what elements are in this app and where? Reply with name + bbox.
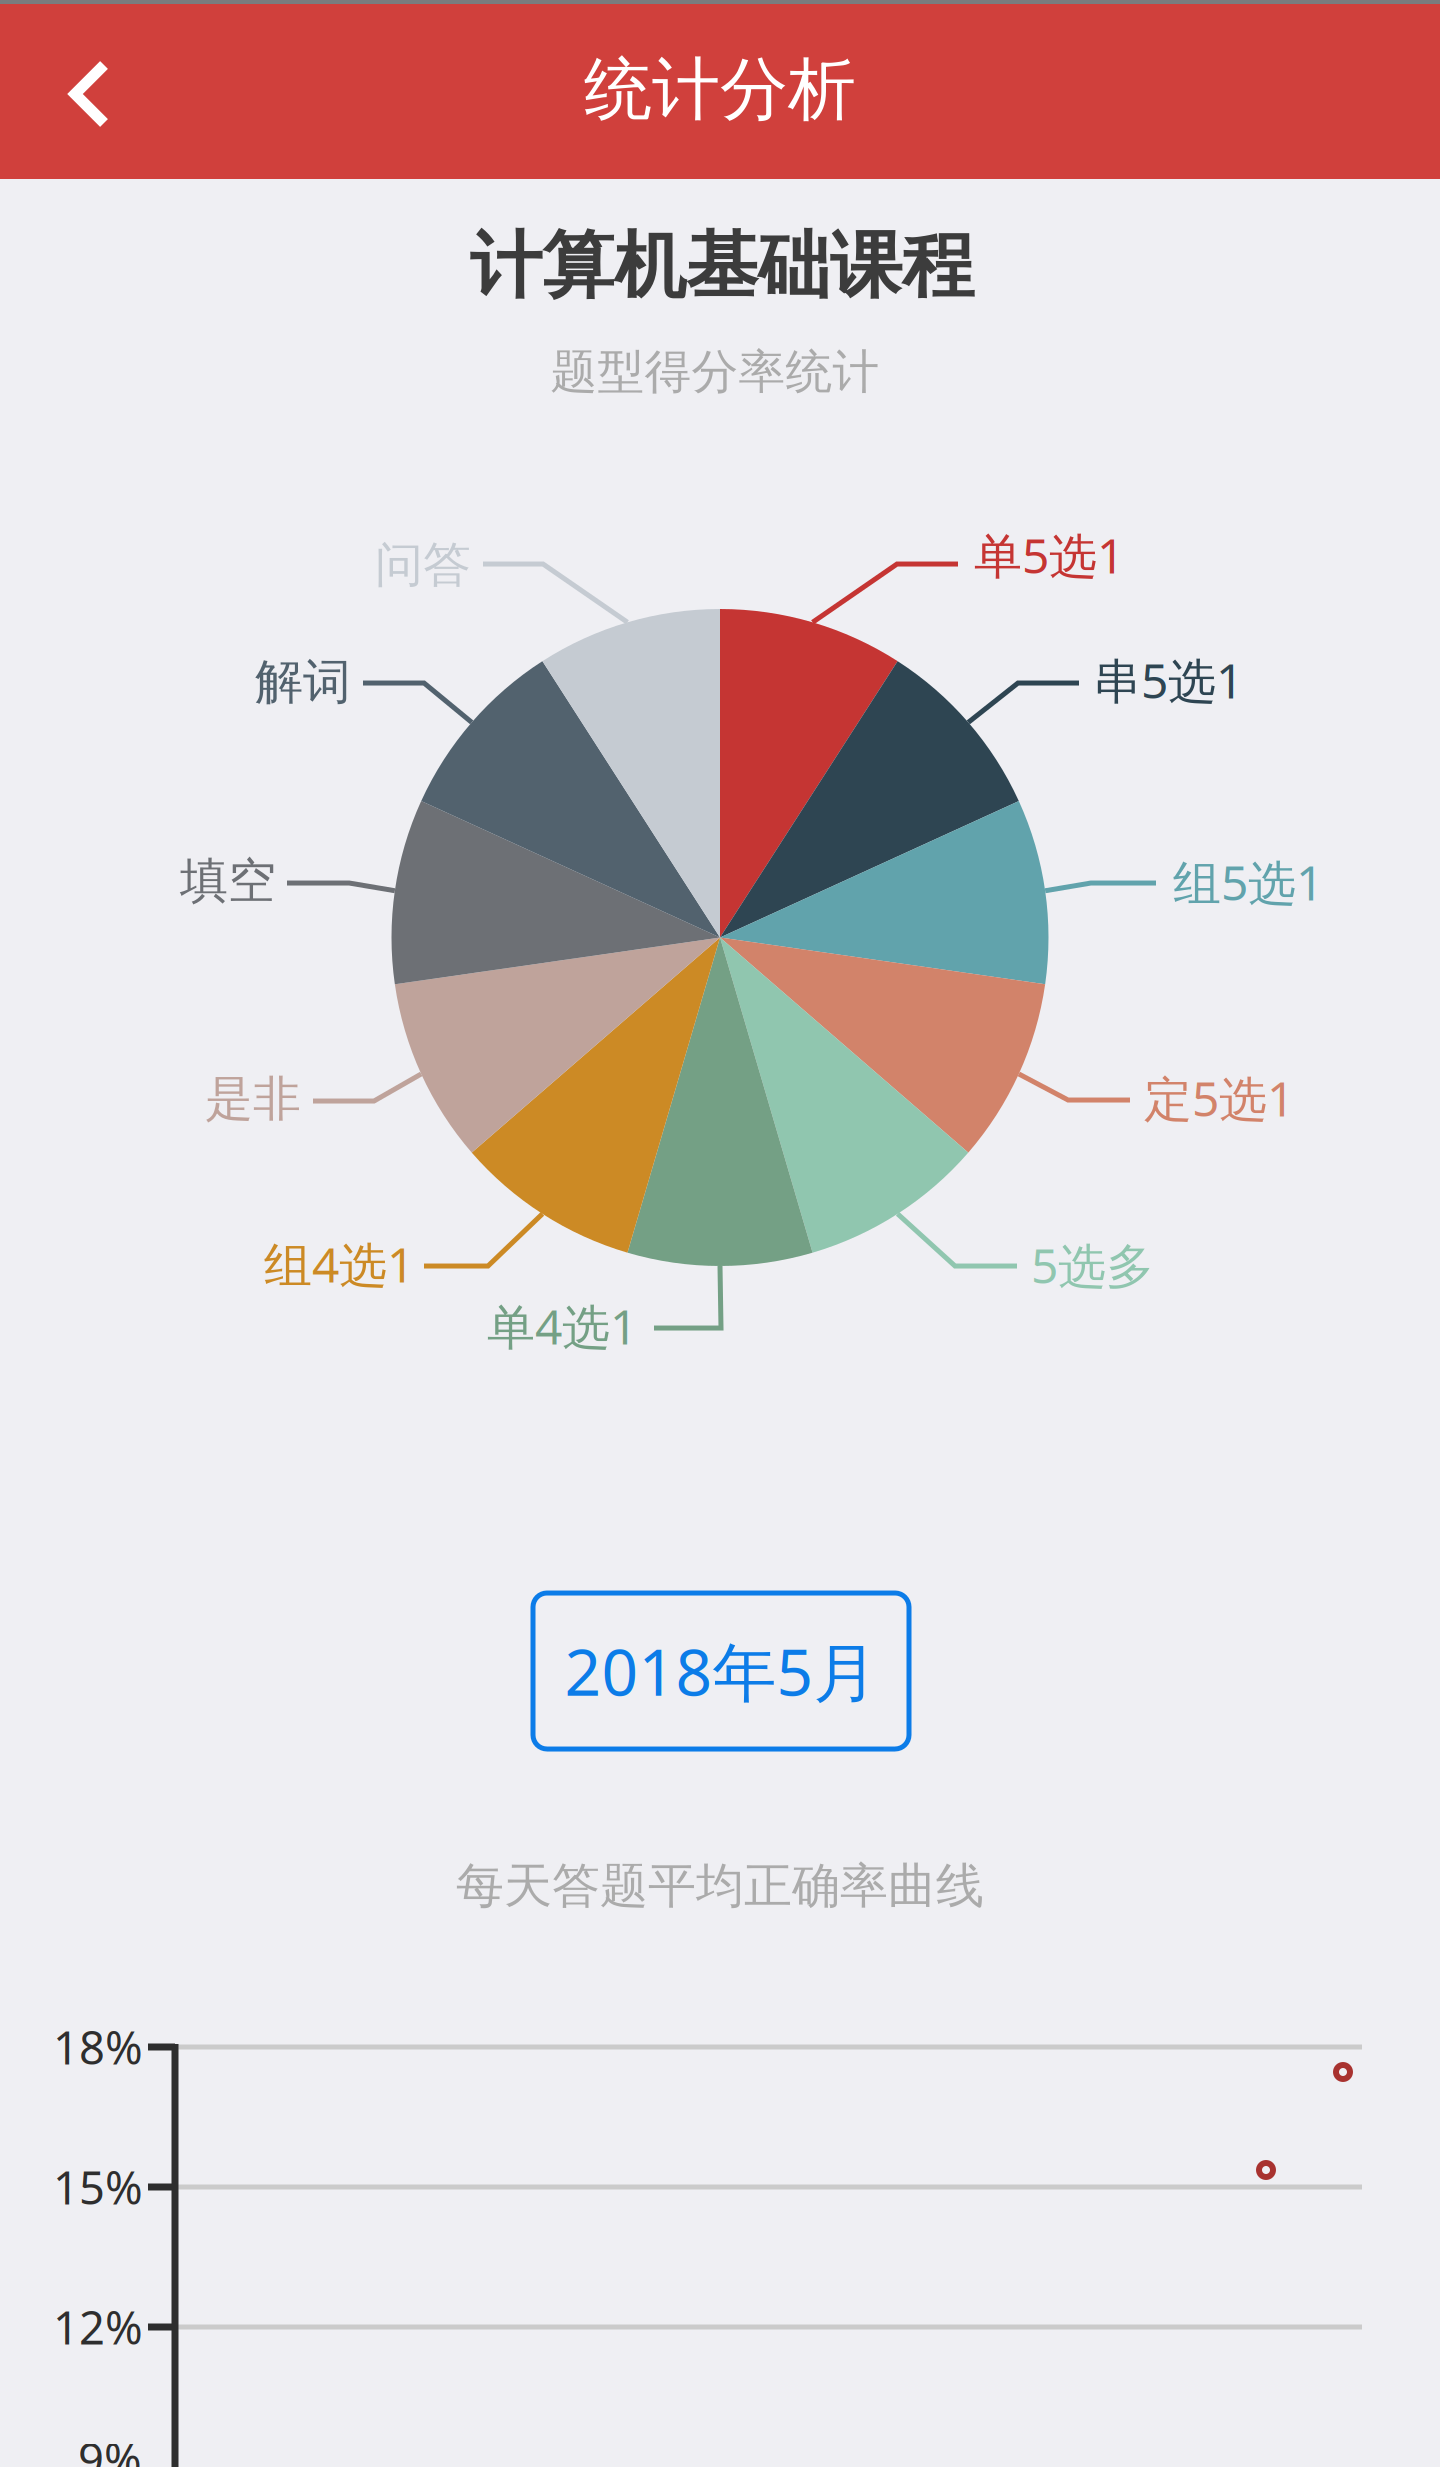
staticText: 5选多 — [1031, 1233, 1154, 1297]
staticText: 每天答题平均正确率曲线 — [456, 1856, 984, 1915]
staticText: 单4选1 — [487, 1294, 637, 1358]
staticText: 组5选1 — [1173, 850, 1323, 914]
staticText: 12% — [53, 2297, 143, 2357]
staticText: 解词 — [255, 652, 351, 711]
staticText: 9% — [78, 2429, 142, 2467]
staticText: 2018年5月 — [564, 1628, 877, 1713]
staticText: 18% — [53, 2017, 143, 2077]
staticText: 组4选1 — [264, 1232, 414, 1296]
staticText: 串5选1 — [1093, 648, 1243, 712]
button[interactable]: 2018年5月 — [533, 1593, 909, 1749]
staticText: 统计分析 — [584, 48, 856, 131]
staticText: 问答 — [375, 535, 471, 594]
staticText: 题型得分率统计 — [550, 343, 879, 401]
staticText: 单5选1 — [974, 523, 1124, 587]
staticText: 计算机基础课程 — [470, 222, 974, 310]
staticText: 填空 — [180, 851, 276, 910]
button[interactable]: Back — [0, 4, 156, 179]
staticText: 定5选1 — [1144, 1066, 1294, 1130]
staticText: 是非 — [205, 1069, 301, 1128]
staticText: 15% — [53, 2157, 143, 2217]
